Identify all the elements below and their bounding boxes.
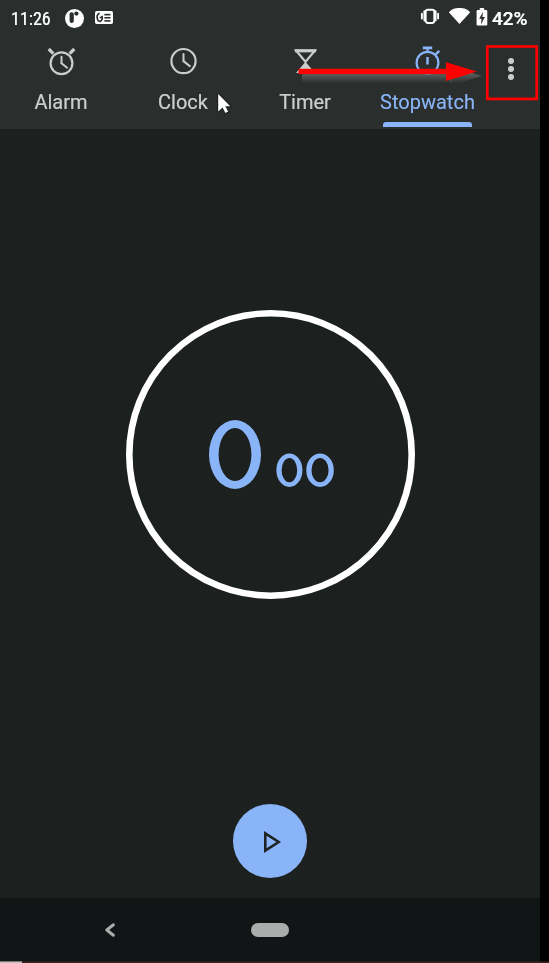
button[interactable]: Alarm: [0, 36, 122, 129]
staticText: Alarm: [34, 90, 88, 113]
button[interactable]: Clock: [122, 36, 244, 129]
button[interactable]: More options: [487, 45, 535, 93]
staticText: Stopwatch: [380, 90, 475, 113]
button[interactable]: Timer: [244, 36, 366, 129]
staticText: Clock: [158, 90, 208, 113]
button[interactable]: Start stopwatch: [233, 804, 307, 878]
button[interactable]: Stopwatch: [366, 36, 488, 129]
staticText: 42%: [492, 7, 528, 29]
staticText: 11:26: [11, 8, 51, 29]
button[interactable]: Home: [251, 923, 289, 937]
button[interactable]: Back: [90, 910, 130, 950]
staticText: Timer: [279, 90, 331, 113]
